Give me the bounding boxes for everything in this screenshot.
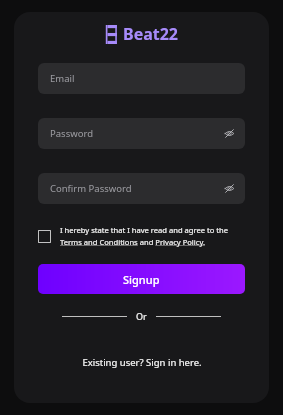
staticText: Password (50, 127, 93, 140)
staticText: Existing user? Sign in here. (82, 356, 202, 369)
button[interactable]: Password (38, 118, 245, 149)
button[interactable]: Confirm Password (38, 173, 245, 204)
staticText: Email (50, 72, 75, 85)
staticText: Or (136, 310, 147, 322)
staticText: I hereby state that I have read and agre… (60, 225, 229, 235)
button[interactable]: Show password (223, 127, 236, 140)
staticText: Signup (123, 272, 160, 287)
staticText: Confirm Password (50, 182, 132, 195)
button[interactable]: Signup (38, 264, 245, 294)
button[interactable]: Existing user? Sign in here. (38, 356, 245, 369)
staticText: Terms and Conditions and Privacy Policy. (60, 237, 205, 247)
button[interactable]: Show password (223, 182, 236, 195)
button[interactable]: Email (38, 63, 245, 94)
staticText: Beat22 (123, 23, 179, 45)
button[interactable]: I hereby state that I have read and agre… (38, 225, 245, 247)
